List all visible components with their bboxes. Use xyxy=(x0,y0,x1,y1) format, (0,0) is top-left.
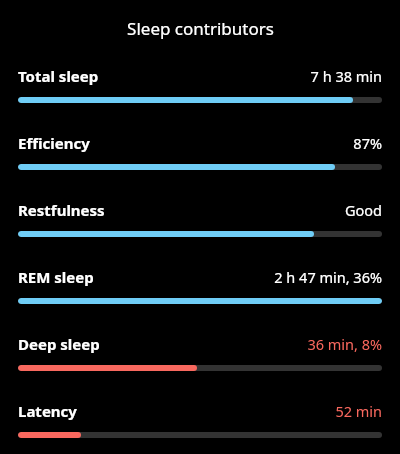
staticText: Good xyxy=(344,200,382,220)
staticText: 7 h 38 min xyxy=(310,66,382,86)
staticText: Sleep contributors xyxy=(127,17,274,40)
staticText: 87% xyxy=(353,133,382,153)
button[interactable]: REM sleep xyxy=(0,267,400,304)
button[interactable]: Restfulness xyxy=(0,200,400,237)
staticText: REM sleep xyxy=(18,267,94,287)
staticText: Restfulness xyxy=(18,200,105,220)
staticText: 36 min, 8% xyxy=(307,334,382,354)
button[interactable]: Efficiency xyxy=(0,133,400,170)
button[interactable]: Latency xyxy=(0,401,400,438)
staticText: Total sleep xyxy=(18,66,99,86)
staticText: Latency xyxy=(18,401,77,421)
staticText: Efficiency xyxy=(18,133,90,153)
staticText: Deep sleep xyxy=(18,334,100,354)
button[interactable]: Deep sleep xyxy=(0,334,400,371)
staticText: 52 min xyxy=(335,401,382,421)
button[interactable]: Total sleep xyxy=(0,66,400,103)
staticText: 2 h 47 min, 36% xyxy=(274,267,382,287)
